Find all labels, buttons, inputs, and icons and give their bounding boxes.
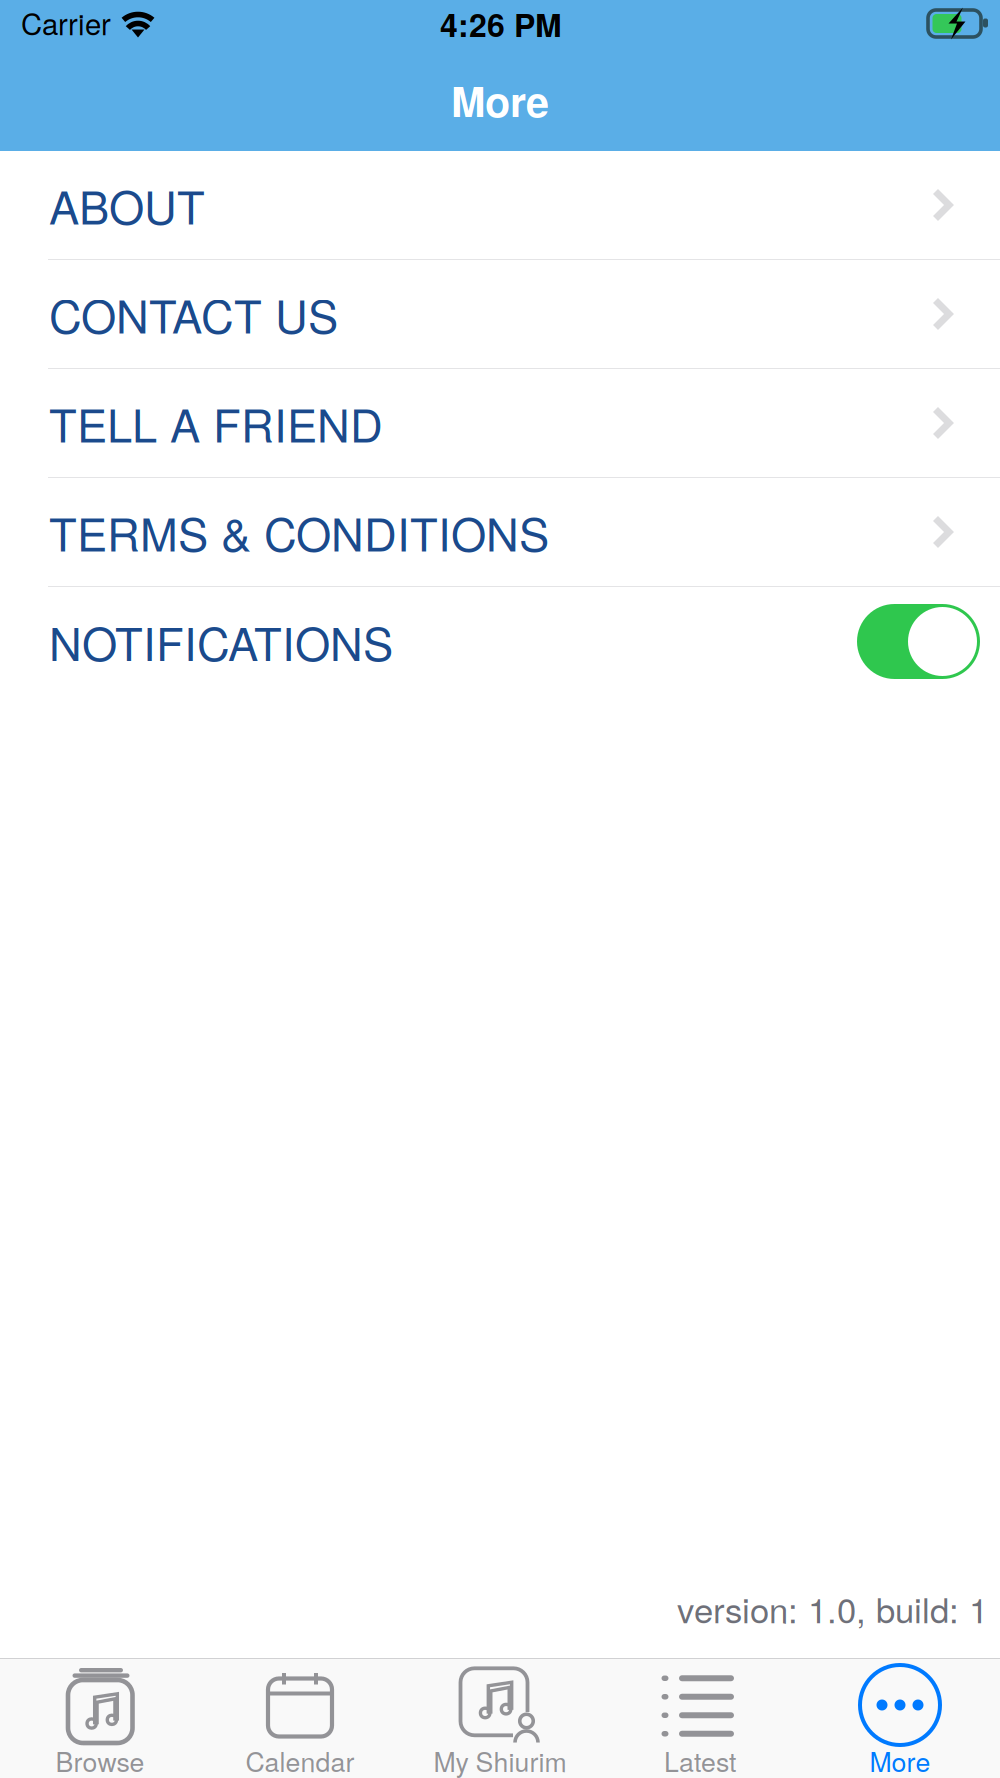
staticText: Carrier <box>21 1 111 43</box>
button[interactable]: More <box>800 1659 1000 1778</box>
staticText: NOTIFICATIONS <box>49 609 393 674</box>
button[interactable]: Calendar <box>200 1659 400 1778</box>
staticText: Latest <box>664 1741 736 1778</box>
staticText: Calendar <box>245 1741 354 1778</box>
staticText: My Shiurim <box>433 1741 566 1778</box>
button[interactable]: TERMS & CONDITIONS <box>0 478 1000 587</box>
staticText: More <box>869 1741 930 1778</box>
staticText: TERMS & CONDITIONS <box>49 499 549 564</box>
button[interactable]: Browse <box>0 1659 200 1778</box>
button[interactable]: TELL A FRIEND <box>0 369 1000 478</box>
staticText: CONTACT US <box>49 281 338 346</box>
button[interactable]: Notifications <box>857 604 980 679</box>
staticText: 4:26 PM <box>440 1 562 47</box>
button[interactable]: ABOUT <box>0 151 1000 260</box>
button[interactable]: CONTACT US <box>0 260 1000 369</box>
button[interactable]: My Shiurim <box>400 1659 600 1778</box>
button[interactable]: Latest <box>600 1659 800 1778</box>
staticText: TELL A FRIEND <box>49 390 383 455</box>
staticText: ABOUT <box>49 172 205 237</box>
staticText: Browse <box>55 1741 144 1778</box>
staticText: More <box>451 70 549 130</box>
staticText: version: 1.0, build: 1 <box>677 1583 988 1633</box>
